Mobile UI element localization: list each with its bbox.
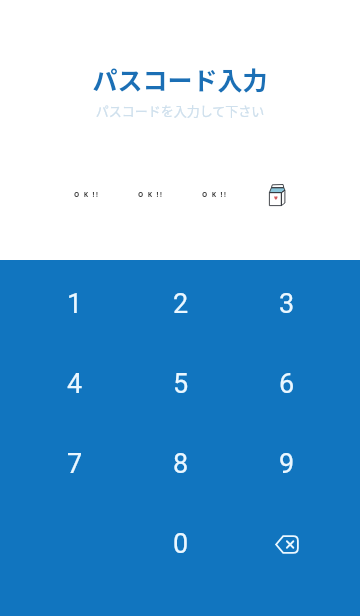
button[interactable]: 5 bbox=[133, 348, 229, 420]
staticText: 2 bbox=[173, 288, 189, 320]
button[interactable]: 1 bbox=[27, 268, 123, 340]
staticText: 6 bbox=[279, 368, 295, 400]
staticText: パスコードを入力して下さい bbox=[0, 101, 360, 120]
staticText: パスコード入力 bbox=[0, 61, 360, 97]
staticText: 0 bbox=[173, 528, 189, 560]
staticText: 7 bbox=[67, 448, 83, 480]
button[interactable]: 8 bbox=[133, 428, 229, 500]
staticText: 4 bbox=[67, 368, 83, 400]
button[interactable]: 0 bbox=[133, 508, 229, 580]
button[interactable]: 4 bbox=[27, 348, 123, 420]
staticText: 3 bbox=[279, 288, 295, 320]
button[interactable]: 2 bbox=[133, 268, 229, 340]
button[interactable]: 3 bbox=[239, 268, 335, 340]
staticText: 9 bbox=[279, 448, 295, 480]
button[interactable]: 6 bbox=[239, 348, 335, 420]
staticText: 1 bbox=[67, 288, 83, 320]
staticText: 8 bbox=[173, 448, 189, 480]
other: Delete bbox=[275, 535, 299, 554]
button[interactable]: Delete bbox=[239, 508, 335, 580]
staticText: O K !! bbox=[138, 190, 164, 199]
staticText: O K !! bbox=[202, 190, 228, 199]
button[interactable]: 7 bbox=[27, 428, 123, 500]
staticText: 5 bbox=[173, 368, 189, 400]
button[interactable]: 9 bbox=[239, 428, 335, 500]
staticText: O K !! bbox=[74, 190, 100, 199]
